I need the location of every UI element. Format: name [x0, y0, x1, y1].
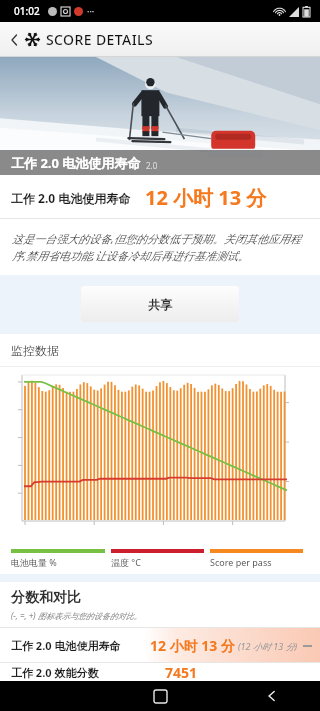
staticText: 7451	[165, 663, 198, 681]
staticText: SCORE DETAILS	[46, 30, 153, 49]
staticText: 工作 2.0 电池使用寿命	[11, 638, 121, 653]
staticText: ···	[87, 5, 95, 17]
staticText: 工作 2.0 电池使用寿命	[11, 154, 141, 172]
staticText: 工作 2.0 电池使用寿命	[11, 190, 131, 206]
staticText: 01:02	[14, 4, 40, 18]
button[interactable]: 共享	[81, 286, 239, 322]
button[interactable]: Back	[266, 690, 278, 702]
staticText: 分数和对比	[11, 589, 81, 607]
staticText: (12 小时 13 分)	[238, 640, 298, 652]
staticText: 温度 °C	[111, 556, 141, 568]
staticText: Score per pass	[210, 556, 272, 568]
staticText: 电池电量 %	[11, 556, 57, 568]
staticText: 共享	[148, 297, 172, 312]
staticText: 监控数据	[11, 343, 59, 358]
button[interactable]: 工作 2.0 电池使用寿命	[0, 628, 320, 662]
button[interactable]: Home	[154, 690, 167, 703]
staticText: 这是一台强大的设备,但您的分数低于预期。关闭其他应用程序,禁用省电功能,让设备冷…	[12, 231, 308, 264]
staticText: 12 小时 13 分	[150, 636, 235, 655]
staticText: 工作 2.0 效能分数	[11, 665, 99, 680]
staticText: 12 小时 13 分	[145, 184, 267, 211]
button[interactable]: Back	[6, 31, 24, 49]
staticText: (-, =, +) 图标表示与您的设备的对比。	[11, 610, 142, 621]
staticText: 2.0	[146, 160, 158, 171]
